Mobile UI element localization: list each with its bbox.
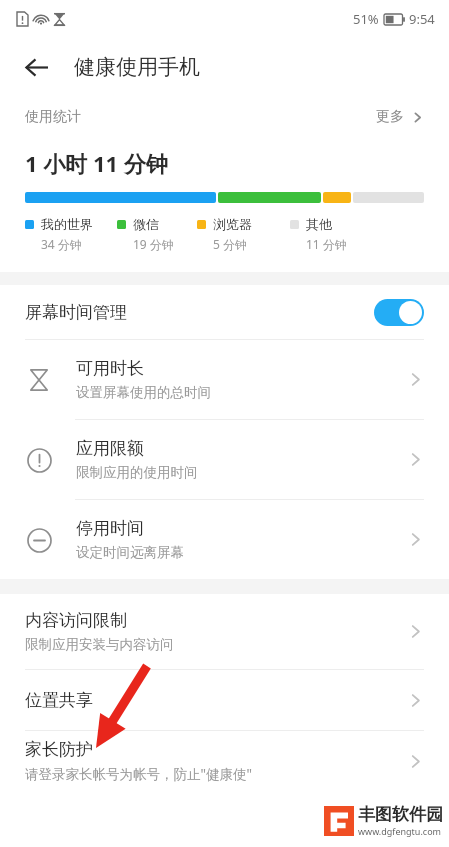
- staticText: 设置屏幕使用的总时间: [76, 384, 211, 401]
- staticText: 可用时长: [76, 358, 144, 379]
- staticText: 我的世界: [41, 216, 93, 232]
- staticText: 1 小时 11 分钟: [25, 148, 168, 178]
- button[interactable]: 应用限额: [0, 420, 449, 499]
- button[interactable]: 停用时间: [0, 500, 449, 579]
- staticText: 19 分钟: [133, 236, 174, 252]
- staticText: 11 分钟: [306, 236, 347, 252]
- button[interactable]: 屏幕时间管理: [0, 285, 449, 339]
- staticText: 5 分钟: [213, 236, 247, 252]
- staticText: 限制应用的使用时间: [76, 464, 198, 481]
- button[interactable]: 位置共享: [0, 670, 449, 730]
- button[interactable]: 可用时长: [0, 340, 449, 419]
- button[interactable]: 使用统计: [0, 96, 449, 138]
- button[interactable]: 返回: [14, 45, 58, 89]
- staticText: 34 分钟: [41, 236, 82, 252]
- staticText: 限制应用安装与内容访问: [25, 636, 174, 653]
- staticText: 其他: [306, 216, 332, 232]
- staticText: 家长防护: [25, 739, 93, 760]
- button[interactable]: 家长防护: [0, 731, 449, 791]
- staticText: 设定时间远离屏幕: [76, 544, 184, 561]
- staticText: 使用统计: [25, 108, 81, 126]
- staticText: 更多: [376, 108, 404, 126]
- staticText: 丰图软件园: [358, 804, 443, 825]
- staticText: www.dgfengtu.com: [358, 825, 442, 837]
- staticText: 请登录家长帐号为帐号，防止"健康使": [25, 765, 253, 783]
- staticText: 健康使用手机: [74, 54, 200, 80]
- staticText: 9:54: [409, 10, 435, 28]
- staticText: 浏览器: [213, 216, 252, 232]
- staticText: 停用时间: [76, 518, 144, 539]
- staticText: 微信: [133, 216, 159, 232]
- staticText: 屏幕时间管理: [25, 302, 127, 323]
- staticText: 内容访问限制: [25, 610, 127, 631]
- staticText: 位置共享: [25, 690, 93, 711]
- staticText: 51%: [353, 10, 379, 28]
- button[interactable]: 内容访问限制: [0, 594, 449, 669]
- staticText: 应用限额: [76, 438, 144, 459]
